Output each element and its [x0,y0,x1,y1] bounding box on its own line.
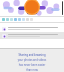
staticText: your photos and videos [3,58,61,62]
button[interactable]: Filter [10,18,13,21]
button[interactable]: Filter [22,18,25,21]
button[interactable] [2,25,62,32]
button[interactable]: Sharing and browsing [3,53,61,72]
staticText: Sharing and browsing [3,53,61,57]
button[interactable]: Filter [14,18,17,21]
button[interactable]: Filter [6,18,9,21]
button[interactable]: Filter [26,18,29,21]
button[interactable]: Illustration [0,0,64,16]
button[interactable] [2,32,62,39]
button[interactable]: Filter [18,18,21,21]
staticText: than now [3,68,61,72]
staticText: has never been easier [3,63,61,67]
button[interactable]: Filter [2,18,5,21]
